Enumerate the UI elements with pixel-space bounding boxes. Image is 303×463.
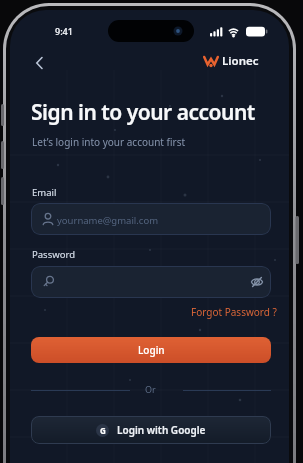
staticText: Or	[145, 383, 156, 395]
staticText: Login with Google	[117, 423, 206, 437]
button[interactable]: Login	[31, 337, 271, 363]
staticText: Forgot Password ?	[191, 305, 277, 319]
staticText: Let’s login into your account first	[32, 135, 186, 149]
staticText: 9:41	[55, 25, 73, 37]
button[interactable]	[249, 274, 265, 290]
staticText: G	[100, 425, 106, 436]
staticText: Login	[138, 343, 165, 357]
button[interactable]	[31, 266, 271, 298]
button[interactable]: G	[31, 416, 271, 444]
staticText: Email	[32, 186, 57, 199]
staticText: yourname@gmail.com	[57, 214, 159, 227]
button[interactable]	[28, 51, 52, 75]
staticText: Sign in to your account	[31, 98, 255, 127]
button[interactable]: yourname@gmail.com	[31, 203, 271, 235]
staticText: Password	[32, 248, 75, 261]
button[interactable]: Forgot Password ?	[189, 303, 279, 321]
staticText: Lionec	[222, 53, 259, 69]
